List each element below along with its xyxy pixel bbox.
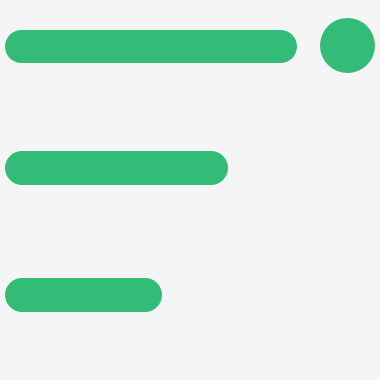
button[interactable]: Menu line two — [5, 151, 228, 185]
button[interactable]: Menu line one — [5, 30, 297, 63]
button[interactable]: Menu line three — [5, 278, 162, 312]
button[interactable]: More options — [320, 18, 375, 73]
